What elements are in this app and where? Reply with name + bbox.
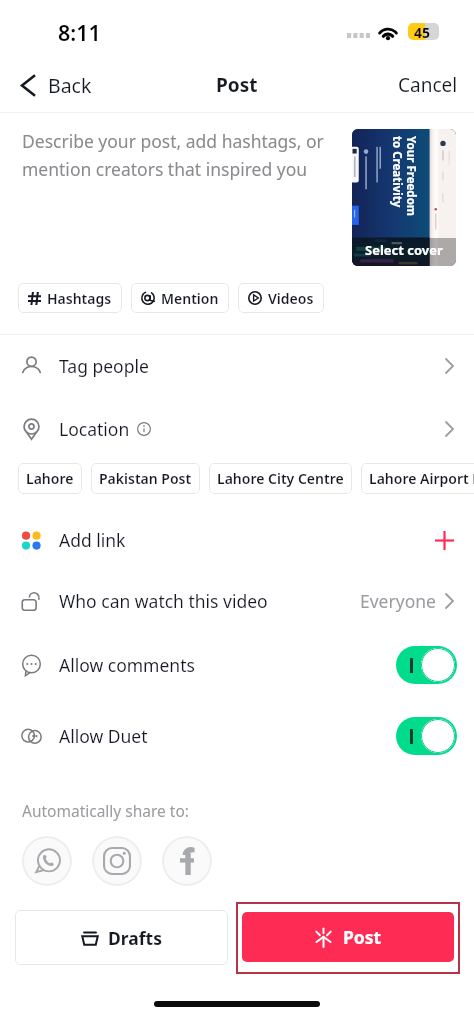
button[interactable]: Mention bbox=[131, 283, 229, 313]
staticText: 8:11 bbox=[58, 18, 101, 47]
staticText: Lahore Airport Parking bbox=[369, 469, 474, 488]
button[interactable]: Who can watch this video bbox=[0, 569, 474, 633]
button[interactable]: Select cover bbox=[352, 129, 456, 266]
button[interactable]: Post bbox=[242, 912, 454, 962]
staticText: Everyone bbox=[360, 589, 436, 613]
staticText: Post bbox=[343, 925, 382, 949]
staticText: Your Freedom to Creativity bbox=[390, 136, 419, 217]
button[interactable]: Allow comments bbox=[396, 646, 457, 684]
button[interactable]: Instagram bbox=[92, 836, 142, 886]
staticText: Who can watch this video bbox=[59, 589, 268, 613]
staticText: Add link bbox=[59, 528, 126, 552]
staticText: Pakistan Post bbox=[99, 469, 192, 488]
staticText: Lahore bbox=[26, 469, 74, 488]
button[interactable]: Back bbox=[0, 64, 106, 107]
button[interactable]: Allow Duet bbox=[396, 717, 457, 755]
staticText: Back bbox=[48, 72, 92, 99]
button[interactable]: Facebook bbox=[162, 836, 212, 886]
staticText: Hashtags bbox=[47, 289, 112, 308]
staticText: Post bbox=[216, 72, 258, 98]
staticText: Lahore City Centre bbox=[217, 469, 344, 488]
button[interactable]: Lahore bbox=[18, 463, 82, 494]
button[interactable]: Videos bbox=[238, 283, 324, 313]
staticText: Automatically share to: bbox=[22, 800, 189, 821]
button[interactable]: Pakistan Post bbox=[91, 463, 200, 494]
staticText: Allow comments bbox=[59, 653, 195, 677]
button[interactable]: Lahore City Centre bbox=[209, 463, 352, 494]
staticText: Drafts bbox=[108, 926, 162, 950]
staticText: Select cover bbox=[365, 241, 443, 259]
staticText: Describe your post, add hashtags, or men… bbox=[22, 129, 330, 181]
staticText: Location bbox=[59, 417, 130, 441]
button[interactable]: Cancel bbox=[382, 62, 474, 108]
button[interactable]: WhatsApp bbox=[22, 836, 72, 886]
staticText: Videos bbox=[268, 289, 314, 308]
button[interactable]: Add link bbox=[0, 509, 474, 571]
button[interactable]: Lahore Airport Parking bbox=[361, 463, 474, 494]
button[interactable]: Location bbox=[0, 397, 474, 461]
staticText: Mention bbox=[161, 289, 219, 308]
button[interactable]: Drafts bbox=[15, 910, 228, 965]
button[interactable]: Tag people bbox=[0, 334, 474, 398]
staticText: Tag people bbox=[59, 354, 149, 378]
button[interactable]: Hashtags bbox=[18, 283, 122, 313]
staticText: Allow Duet bbox=[59, 724, 148, 748]
staticText: 45 bbox=[414, 23, 431, 40]
